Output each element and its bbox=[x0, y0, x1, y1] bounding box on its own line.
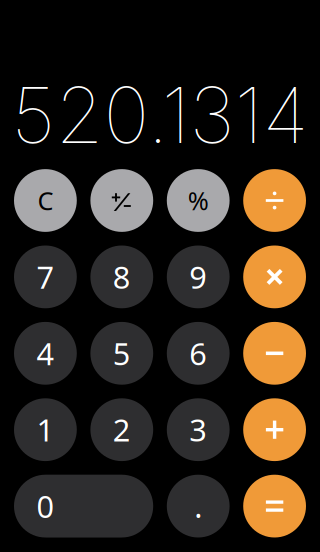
button[interactable]: 1 bbox=[14, 398, 77, 461]
button[interactable]: Subtract bbox=[243, 322, 306, 385]
button[interactable]: 4 bbox=[14, 322, 77, 385]
staticText: 8 bbox=[113, 256, 131, 297]
button[interactable]: . bbox=[167, 475, 230, 537]
button[interactable]: 2 bbox=[90, 398, 153, 461]
staticText: . bbox=[194, 486, 202, 526]
button[interactable]: 9 bbox=[167, 245, 230, 308]
staticText: 520.1314 bbox=[11, 68, 308, 162]
staticText: 1 bbox=[36, 409, 54, 450]
button[interactable]: Toggle sign bbox=[90, 169, 153, 232]
button[interactable]: 0 bbox=[14, 475, 153, 537]
staticText: 2 bbox=[113, 409, 131, 450]
staticText: 0 bbox=[36, 486, 54, 526]
staticText: 3 bbox=[189, 409, 207, 450]
staticText: 9 bbox=[189, 256, 207, 297]
button[interactable]: 6 bbox=[167, 322, 230, 385]
staticText: C bbox=[37, 184, 53, 217]
staticText: 5 bbox=[113, 333, 131, 374]
staticText: % bbox=[188, 184, 209, 217]
staticText: 6 bbox=[189, 333, 207, 374]
button[interactable]: C bbox=[14, 169, 77, 232]
button[interactable]: Multiply bbox=[243, 245, 306, 308]
button[interactable]: 7 bbox=[14, 245, 77, 308]
button[interactable]: 8 bbox=[90, 245, 153, 308]
button[interactable]: % bbox=[167, 169, 230, 232]
button[interactable]: Add bbox=[243, 398, 306, 461]
button[interactable]: Divide bbox=[243, 169, 306, 232]
button[interactable]: 3 bbox=[167, 398, 230, 461]
staticText: 7 bbox=[36, 256, 54, 297]
staticText: 4 bbox=[36, 333, 54, 374]
button[interactable]: 5 bbox=[90, 322, 153, 385]
button[interactable]: Equals bbox=[243, 475, 306, 537]
